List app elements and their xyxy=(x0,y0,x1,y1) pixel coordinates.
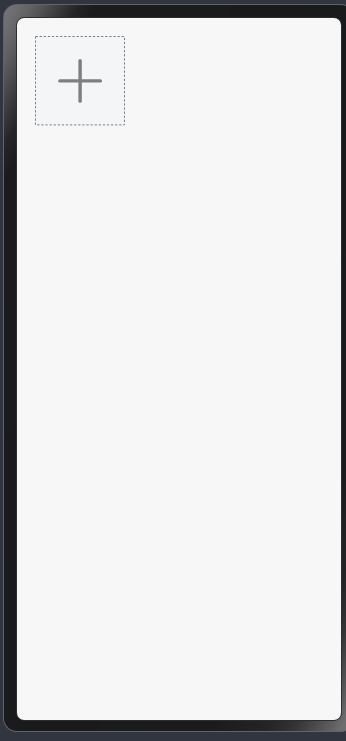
button[interactable]: Add item xyxy=(36,37,125,125)
